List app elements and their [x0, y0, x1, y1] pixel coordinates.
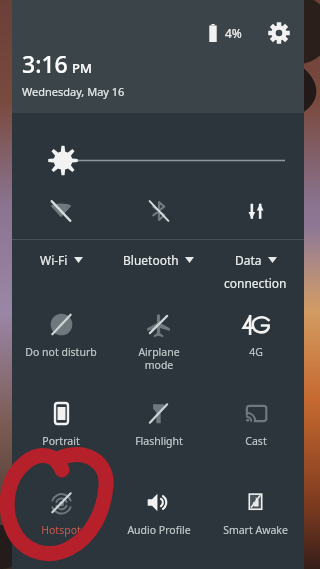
button[interactable]: 4G: [207, 302, 304, 391]
staticText: Airplane mode: [138, 345, 180, 372]
button[interactable]: Bluetooth: [110, 242, 207, 302]
staticText: Cast: [245, 434, 267, 448]
staticText: 4G: [249, 345, 263, 359]
button[interactable]: Flashlight: [110, 391, 207, 480]
staticText: connection: [224, 275, 287, 291]
staticText: Audio Profile: [127, 523, 191, 537]
staticText: Bluetooth: [123, 252, 179, 268]
button[interactable]: Wi-Fi: [12, 242, 110, 302]
button[interactable]: Audio Profile: [110, 480, 207, 569]
button[interactable]: Data: [207, 242, 304, 302]
staticText: Hotspot: [41, 523, 81, 537]
button[interactable]: Cast: [207, 391, 304, 480]
button[interactable]: Airplane mode: [110, 302, 207, 391]
staticText: Do not disturb: [25, 345, 97, 359]
staticText: Smart Awake: [223, 523, 288, 537]
button[interactable]: Do not disturb: [12, 302, 110, 391]
button[interactable]: Data activity: [207, 185, 304, 237]
staticText: Portrait: [42, 434, 80, 448]
staticText: Wednesday, May 16: [22, 84, 125, 99]
staticText: PM: [72, 59, 92, 77]
button[interactable]: Settings: [264, 18, 294, 48]
button[interactable]: Wi-Fi off: [12, 185, 110, 237]
staticText: Flashlight: [135, 434, 183, 448]
staticText: Wi-Fi: [40, 252, 68, 268]
staticText: 3:16: [22, 48, 68, 79]
staticText: 4%: [225, 25, 242, 41]
button[interactable]: Bluetooth off: [110, 185, 207, 237]
button[interactable]: Portrait: [12, 391, 110, 480]
button[interactable]: Hotspot: [12, 480, 110, 569]
staticText: Data: [235, 252, 262, 268]
button[interactable]: Smart Awake: [207, 480, 304, 569]
